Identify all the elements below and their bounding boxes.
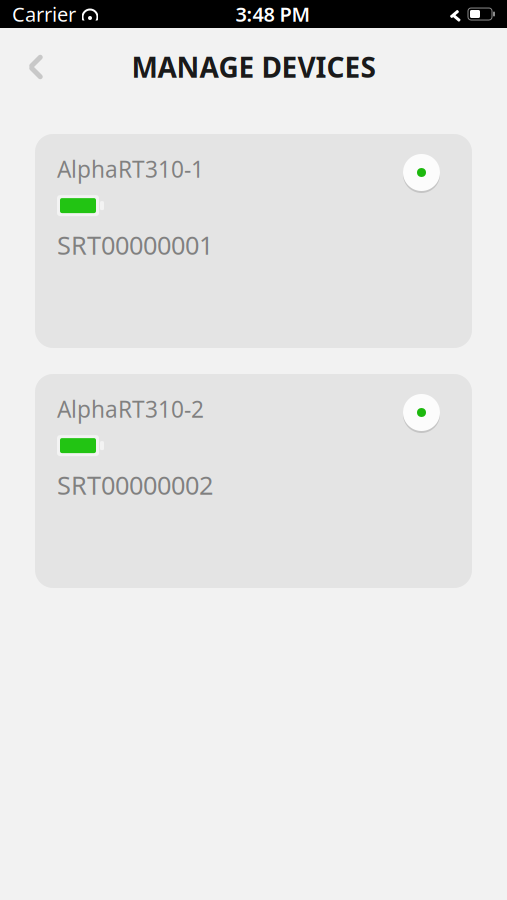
staticText: Carrier [12,1,76,27]
staticText: AlphaRT310-2 [57,394,204,424]
staticText: 3:48 PM [235,1,310,27]
staticText: AlphaRT310-1 [57,154,204,184]
staticText: MANAGE DEVICES [131,48,375,86]
button[interactable]: Back [10,41,62,93]
button[interactable]: AlphaRT310-1 [35,134,472,348]
button[interactable]: AlphaRT310-2 [35,374,472,588]
staticText: SRT00000001 [57,228,213,262]
staticText: SRT00000002 [57,468,213,502]
